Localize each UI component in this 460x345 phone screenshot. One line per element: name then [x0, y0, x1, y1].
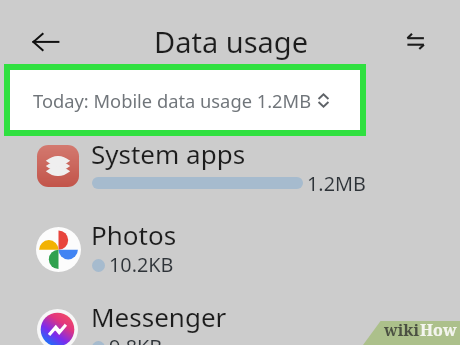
staticText: How [420, 319, 457, 341]
staticText: Messenger [91, 299, 227, 334]
staticText: Photos [91, 217, 177, 252]
button[interactable]: Back [26, 22, 66, 62]
staticText: Data usage [154, 22, 308, 61]
staticText: Today: Mobile data usage 1.2MB [33, 88, 312, 113]
button[interactable]: Photos [0, 221, 460, 299]
staticText: wiki [384, 319, 420, 341]
button[interactable]: Messenger [0, 303, 460, 345]
button[interactable]: Switch network type [396, 22, 436, 62]
staticText: 9.8KB [109, 333, 163, 345]
button[interactable]: System apps [0, 140, 460, 218]
staticText: System apps [91, 136, 246, 171]
staticText: 10.2KB [109, 251, 174, 278]
button[interactable]: Today: Mobile data usage 1.2MB [10, 70, 360, 130]
staticText: 1.2MB [307, 170, 366, 197]
